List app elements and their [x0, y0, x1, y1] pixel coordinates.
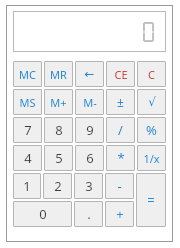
staticText: + [116, 205, 124, 223]
staticText: 0 [39, 205, 47, 223]
staticText: * [117, 149, 125, 167]
staticText: - [117, 177, 122, 195]
button[interactable]: 4 [13, 145, 42, 171]
button[interactable]: 5 [44, 145, 73, 171]
button[interactable]: - [105, 173, 134, 199]
staticText: MC [19, 67, 36, 82]
staticText: M+ [50, 95, 67, 110]
staticText: % [146, 121, 157, 139]
staticText: 5 [55, 149, 63, 167]
other: Backspace [75, 61, 104, 87]
button[interactable]: ± [106, 89, 135, 115]
staticText: CE [114, 67, 128, 82]
staticText: . [87, 205, 91, 223]
staticText: M- [83, 95, 97, 110]
staticText: / [118, 121, 123, 139]
staticText: 6 [86, 149, 94, 167]
button[interactable]: 2 [43, 173, 72, 199]
staticText: MR [50, 67, 67, 82]
button[interactable]: 8 [44, 117, 73, 143]
button[interactable]: 1 [13, 173, 41, 199]
button[interactable]: √ [137, 89, 166, 115]
staticText: MS [19, 95, 36, 110]
staticText: ± [117, 94, 124, 110]
button[interactable]: M- [75, 89, 104, 115]
staticText: 3 [85, 177, 93, 195]
staticText: 1 [23, 177, 31, 195]
button[interactable]: 6 [75, 145, 104, 171]
button[interactable]: MR [44, 61, 73, 87]
button[interactable]: 0 [13, 201, 72, 227]
staticText: √ [148, 95, 156, 109]
staticText: 9 [86, 121, 94, 139]
staticText: 7 [24, 121, 32, 139]
button[interactable]: M+ [44, 89, 73, 115]
staticText: 4 [24, 149, 32, 167]
staticText: ← [84, 67, 95, 81]
staticText: C [148, 67, 155, 82]
button[interactable]: MC [13, 61, 42, 87]
staticText: = [147, 191, 155, 209]
staticText: 2 [54, 177, 62, 195]
button[interactable]: CE [106, 61, 135, 87]
button[interactable]: . [74, 201, 103, 227]
button[interactable]: 1/x [137, 145, 166, 171]
button[interactable]: ← [75, 61, 104, 87]
staticText: 8 [55, 121, 63, 139]
button[interactable]: / [106, 117, 135, 143]
button[interactable]: C [137, 61, 166, 87]
button[interactable]: 3 [74, 173, 103, 199]
button[interactable]: * [106, 145, 135, 171]
button[interactable]: % [137, 117, 166, 143]
button[interactable]: + [105, 201, 134, 227]
button[interactable]: 9 [75, 117, 104, 143]
staticText: 1/x [143, 151, 160, 166]
button[interactable]: = [136, 173, 166, 227]
button[interactable]: 7 [13, 117, 42, 143]
button[interactable]: MS [13, 89, 42, 115]
